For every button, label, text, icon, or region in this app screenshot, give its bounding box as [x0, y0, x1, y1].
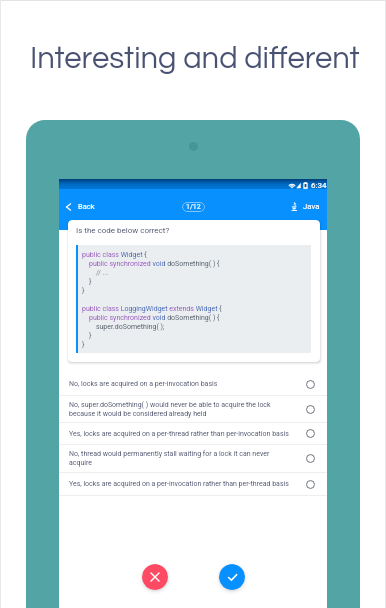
button[interactable]: Yes, locks are acquired on a per-invocat…	[59, 473, 327, 496]
staticText: Back	[78, 202, 95, 211]
button[interactable]: Yes, locks are acquired on a per-thread …	[59, 423, 327, 445]
button[interactable]: Java	[285, 199, 327, 214]
staticText: No, locks are acquired on a per-invocati…	[69, 380, 291, 388]
button[interactable]: No, super.doSomething( ) would never be …	[59, 396, 327, 423]
button[interactable]: Back	[59, 198, 103, 215]
staticText: No, thread would permanently stall waiti…	[69, 450, 291, 467]
staticText: 1/12	[186, 203, 201, 211]
button[interactable]: No, thread would permanently stall waiti…	[59, 445, 327, 473]
button[interactable]: Mark as wrong	[142, 564, 168, 590]
button[interactable]: Confirm answer	[219, 564, 245, 590]
staticText: Is the code below correct?	[76, 226, 170, 235]
button[interactable]: No, locks are acquired on a per-invocati…	[59, 373, 327, 396]
staticText: Java	[303, 202, 320, 211]
staticText: Yes, locks are acquired on a per-invocat…	[69, 480, 291, 488]
staticText: Interesting and different	[30, 43, 360, 75]
staticText: 6:34	[311, 181, 327, 190]
staticText: public class Widget { public synchronize…	[82, 251, 222, 349]
button[interactable]: 1/12	[186, 203, 201, 211]
staticText: Yes, locks are acquired on a per-thread …	[69, 430, 291, 438]
staticText: No, super.doSomething( ) would never be …	[69, 401, 291, 418]
